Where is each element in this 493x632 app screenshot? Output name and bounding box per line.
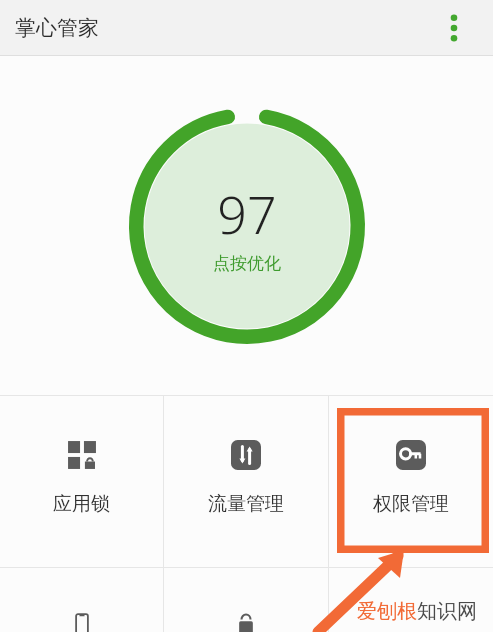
button[interactable]	[329, 568, 493, 632]
other: App lock	[67, 440, 97, 470]
other: Permission management	[396, 440, 426, 470]
other: Data management	[231, 440, 261, 470]
other: Lock	[231, 613, 261, 632]
button[interactable]: Data management	[164, 396, 328, 567]
button[interactable]: Phone	[0, 568, 163, 632]
staticText: 点按优化	[213, 253, 281, 274]
staticText: 知识网	[417, 599, 477, 624]
staticText: 掌心管家	[15, 15, 99, 41]
staticText: 流量管理	[208, 492, 284, 516]
other: Phone	[67, 613, 97, 632]
button[interactable]: More options	[437, 11, 471, 45]
button[interactable]: App lock	[0, 396, 163, 567]
staticText: 权限管理	[373, 492, 449, 516]
staticText: 爱刨根	[357, 599, 417, 624]
staticText: 97	[217, 178, 277, 249]
button[interactable]: 97	[0, 56, 493, 395]
button[interactable]: Permission management	[329, 396, 493, 567]
staticText: 应用锁	[53, 492, 110, 516]
button[interactable]: Lock	[164, 568, 328, 632]
